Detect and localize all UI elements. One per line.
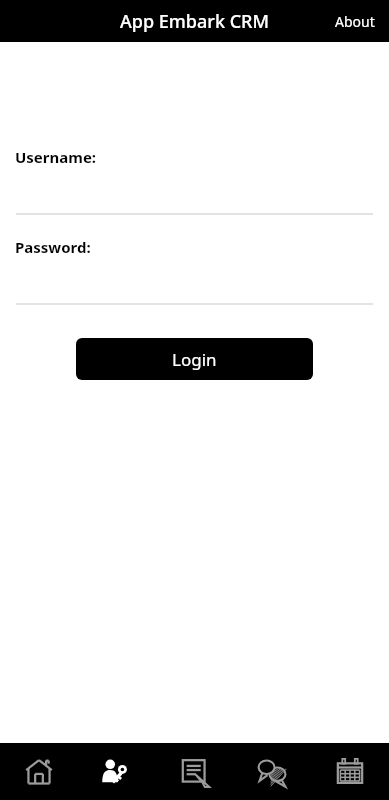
- staticText: Password:: [15, 237, 91, 257]
- button[interactable]: Notes: [155, 743, 233, 800]
- staticText: Login: [172, 348, 217, 371]
- button[interactable]: Home: [0, 743, 77, 800]
- staticText: About: [335, 12, 375, 31]
- button[interactable]: Messages: [233, 743, 311, 800]
- button[interactable]: Login: [76, 338, 313, 380]
- button[interactable]: Calendar: [311, 743, 389, 800]
- button[interactable]: Contacts: [77, 743, 155, 800]
- staticText: App Embark CRM: [0, 9, 389, 34]
- button[interactable]: About: [321, 0, 389, 42]
- staticText: Username:: [15, 147, 97, 167]
